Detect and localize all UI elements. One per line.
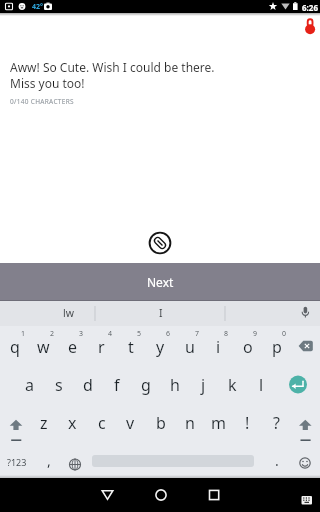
staticText: o — [243, 336, 253, 358]
button[interactable]: u — [175, 334, 204, 360]
staticText: 1 — [21, 329, 26, 339]
staticText: 6 — [166, 329, 171, 339]
button[interactable] — [62, 440, 88, 478]
staticText: a — [25, 374, 34, 396]
staticText: s — [55, 374, 63, 396]
staticText: f — [114, 374, 120, 396]
button[interactable] — [292, 440, 318, 478]
staticText: I — [159, 306, 163, 320]
staticText: q — [10, 336, 20, 358]
button[interactable]: d — [73, 372, 102, 398]
staticText: u — [185, 336, 195, 358]
staticText: d — [83, 374, 93, 396]
staticText: , — [47, 451, 51, 470]
staticText: m — [211, 412, 226, 434]
button[interactable]: l — [247, 372, 276, 398]
button[interactable]: f — [102, 372, 131, 398]
staticText: 0/140 CHARACTERS — [10, 97, 74, 106]
button[interactable]: lw — [54, 300, 83, 326]
staticText: h — [170, 374, 180, 396]
staticText: b — [156, 412, 166, 434]
staticText: ? — [273, 412, 280, 434]
button[interactable] — [290, 301, 320, 326]
button[interactable] — [0, 263, 320, 301]
button[interactable]: r — [87, 334, 116, 360]
button[interactable]: y — [146, 334, 175, 360]
button[interactable]: o — [233, 334, 262, 360]
staticText: c — [98, 412, 106, 434]
button[interactable]: , — [34, 447, 63, 473]
staticText: Aww! So Cute. Wish I could be there. Mis… — [10, 59, 215, 91]
button[interactable] — [296, 484, 320, 512]
staticText: 8 — [224, 329, 229, 339]
staticText: ! — [245, 412, 250, 434]
button[interactable]: n — [175, 410, 204, 436]
staticText: n — [185, 412, 195, 434]
button[interactable]: j — [189, 372, 218, 398]
button[interactable]: a — [15, 372, 44, 398]
button[interactable]: b — [146, 410, 175, 436]
button[interactable]: k — [218, 372, 247, 398]
staticText: e — [68, 336, 78, 358]
button[interactable] — [290, 402, 320, 440]
staticText: t — [128, 336, 134, 358]
staticText: z — [40, 412, 48, 434]
staticText: 2 — [50, 329, 55, 339]
button[interactable] — [194, 478, 234, 512]
button[interactable]: ! — [233, 410, 262, 436]
button[interactable] — [284, 364, 314, 402]
button[interactable]: q — [0, 334, 29, 360]
staticText: p — [272, 336, 282, 358]
staticText: 3 — [79, 329, 84, 339]
button[interactable]: ?123 — [0, 449, 33, 475]
button[interactable] — [138, 221, 182, 265]
button[interactable] — [292, 326, 320, 364]
staticText: j — [201, 374, 206, 396]
button[interactable] — [92, 448, 254, 474]
staticText: 42° — [32, 2, 43, 12]
staticText: 4 — [108, 329, 113, 339]
button[interactable] — [2, 402, 30, 440]
button[interactable] — [141, 478, 181, 512]
staticText: Next — [147, 274, 174, 290]
button[interactable]: s — [44, 372, 73, 398]
button[interactable]: p — [262, 334, 291, 360]
staticText: 0 — [282, 329, 287, 339]
button[interactable]: g — [131, 372, 160, 398]
staticText: y — [156, 336, 165, 358]
button[interactable]: c — [87, 410, 116, 436]
staticText: r — [98, 336, 105, 358]
staticText: ?123 — [7, 456, 27, 468]
staticText: k — [228, 374, 237, 396]
staticText: 7 — [195, 329, 200, 339]
staticText: lw — [63, 306, 74, 320]
staticText: g — [141, 374, 151, 396]
button[interactable]: z — [29, 410, 58, 436]
button[interactable]: e — [58, 334, 87, 360]
button[interactable]: . — [262, 447, 291, 473]
staticText: . — [275, 451, 279, 470]
button[interactable]: ? — [262, 410, 291, 436]
button[interactable]: x — [58, 410, 87, 436]
button[interactable]: h — [160, 372, 189, 398]
button[interactable]: v — [116, 410, 145, 436]
staticText: l — [259, 374, 264, 396]
button[interactable]: I — [146, 300, 175, 326]
button[interactable]: i — [204, 334, 233, 360]
button[interactable]: t — [116, 334, 145, 360]
button[interactable]: w — [29, 334, 58, 360]
staticText: 5 — [137, 329, 142, 339]
staticText: i — [216, 336, 221, 358]
staticText: x — [68, 412, 77, 434]
staticText: 6:26 — [302, 2, 318, 13]
staticText: w — [37, 336, 50, 358]
button[interactable]: m — [204, 410, 233, 436]
staticText: 9 — [253, 329, 258, 339]
staticText: v — [126, 412, 135, 434]
button[interactable] — [88, 478, 128, 512]
